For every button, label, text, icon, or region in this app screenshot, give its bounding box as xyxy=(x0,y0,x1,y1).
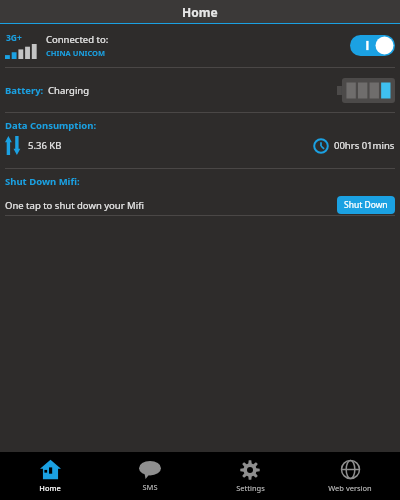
staticText: Home xyxy=(182,4,218,20)
staticText: Shut Down Mifi: xyxy=(5,175,80,188)
staticText: Battery: xyxy=(5,84,44,97)
staticText: Settings xyxy=(236,483,265,493)
staticText: Home xyxy=(39,483,61,493)
button[interactable]: Settings xyxy=(200,452,300,500)
button[interactable]: Connection toggle xyxy=(350,35,395,56)
button[interactable]: Web version xyxy=(300,452,400,500)
staticText: Charging xyxy=(48,84,90,97)
staticText: One tap to shut down your Mifi xyxy=(5,199,144,212)
button[interactable]: SMS xyxy=(100,452,200,500)
staticText: SMS xyxy=(142,482,158,492)
staticText: Shut Down xyxy=(344,199,388,211)
button[interactable]: Shut Down xyxy=(337,196,395,214)
button[interactable]: 3G+ xyxy=(0,24,400,67)
staticText: 3G+ xyxy=(6,32,22,44)
staticText: Data Consumption: xyxy=(5,119,97,132)
staticText: 5.36 KB xyxy=(28,139,62,152)
staticText: Web version xyxy=(328,483,372,493)
button[interactable]: Home xyxy=(0,452,100,500)
staticText: CHINA UNICOM xyxy=(46,48,106,58)
staticText: Connected to: xyxy=(46,33,109,46)
staticText: 00hrs 01mins xyxy=(334,139,395,152)
